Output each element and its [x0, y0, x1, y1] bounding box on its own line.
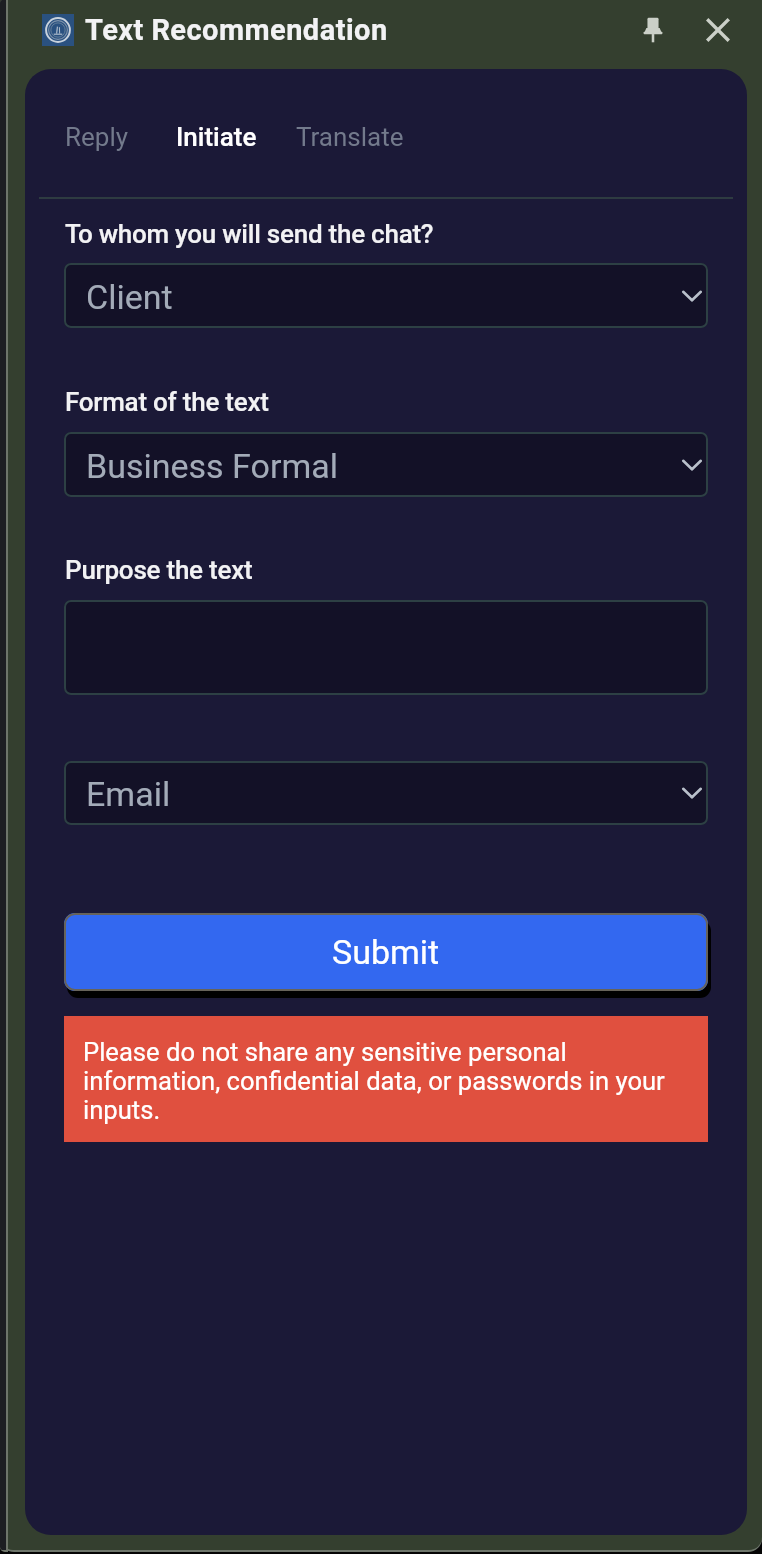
staticText: Initiate — [176, 122, 257, 152]
button[interactable]: Business Formal — [64, 432, 708, 497]
staticText: Please do not share any sensitive person… — [83, 1037, 679, 1125]
staticText: To whom you will send the chat? — [65, 219, 434, 249]
staticText: Purpose the text — [65, 555, 253, 585]
button[interactable]: Email — [64, 761, 708, 825]
staticText: Email — [86, 774, 171, 814]
staticText: Reply — [65, 122, 129, 152]
staticText: Text Recommendation — [85, 13, 388, 47]
button[interactable]: Translate — [290, 116, 410, 158]
button[interactable]: Submit — [64, 913, 708, 991]
staticText: Client — [86, 277, 173, 317]
button[interactable]: Initiate — [170, 116, 263, 158]
button[interactable]: Close — [695, 7, 741, 53]
staticText: Business Formal — [86, 446, 339, 486]
button[interactable]: Client — [64, 263, 708, 328]
button[interactable]: Pin — [630, 7, 676, 53]
staticText: Format of the text — [65, 387, 269, 417]
staticText: Submit — [332, 932, 440, 972]
button[interactable] — [64, 600, 708, 695]
staticText: Translate — [296, 122, 404, 152]
button[interactable]: Reply — [59, 116, 135, 158]
